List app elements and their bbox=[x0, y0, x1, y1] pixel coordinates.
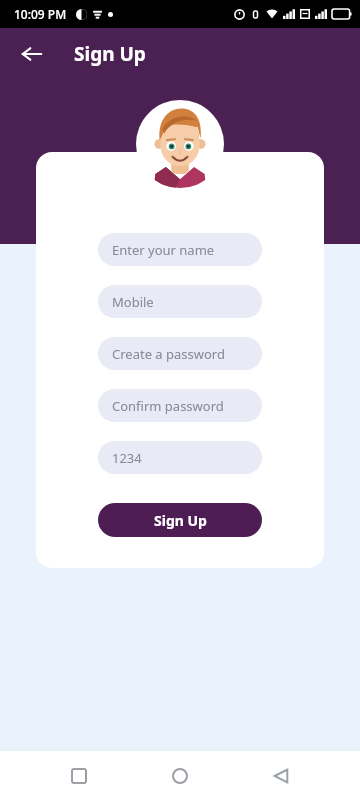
staticText: Mobile bbox=[112, 293, 154, 311]
button[interactable]: 1234 bbox=[98, 441, 262, 474]
button[interactable]: Confirm password bbox=[98, 389, 262, 422]
staticText: Enter your name bbox=[112, 241, 215, 259]
button[interactable]: Enter your name bbox=[98, 233, 262, 266]
staticText: Create a password bbox=[112, 345, 225, 363]
staticText: Sign Up bbox=[74, 41, 146, 67]
staticText: Confirm password bbox=[112, 397, 224, 415]
button[interactable]: Sign Up bbox=[98, 503, 262, 537]
staticText: 10:09 PM bbox=[14, 6, 67, 22]
button[interactable]: Back bbox=[259, 754, 303, 798]
button[interactable]: Back bbox=[12, 34, 52, 74]
button[interactable]: Home bbox=[158, 754, 202, 798]
button[interactable]: Create a password bbox=[98, 337, 262, 370]
staticText: 1234 bbox=[112, 449, 142, 467]
button[interactable]: Profile picture bbox=[136, 100, 224, 188]
button[interactable]: Recent apps bbox=[57, 754, 101, 798]
staticText: Sign Up bbox=[154, 511, 207, 530]
button[interactable]: Mobile bbox=[98, 285, 262, 318]
